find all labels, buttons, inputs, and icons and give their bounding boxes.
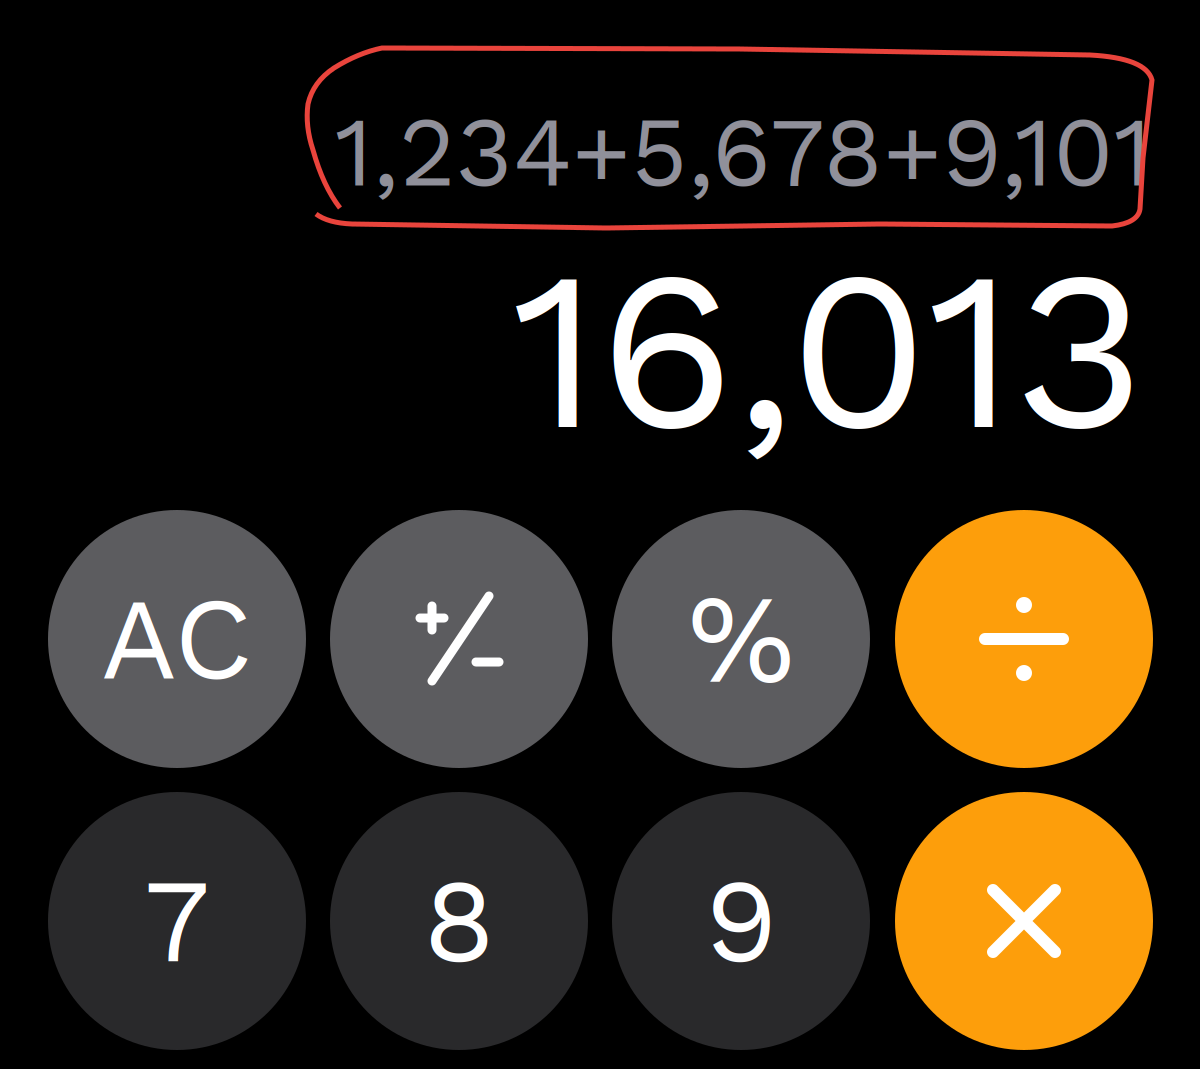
button[interactable]: Divide [895,510,1153,768]
button[interactable]: % [612,510,870,768]
staticText: 9 [705,852,777,990]
staticText: AC [101,572,253,706]
staticText: 8 [423,852,495,990]
staticText: % [687,565,794,712]
staticText: 1,234+5,678+9,101 [335,95,1152,209]
staticText: 7 [144,852,210,990]
button[interactable]: 8 [330,792,588,1050]
button[interactable]: 9 [612,792,870,1050]
staticText: 16,013 [512,219,1146,481]
button[interactable]: Plus or minus [330,510,588,768]
button[interactable]: Multiply [895,792,1153,1050]
button[interactable]: AC [48,510,306,768]
button[interactable]: 7 [48,792,306,1050]
